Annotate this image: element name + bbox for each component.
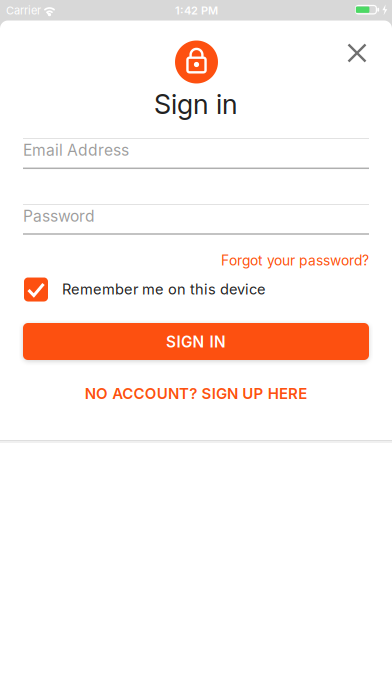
staticText: SIGN IN — [166, 333, 226, 351]
staticText: 1:42 PM — [175, 4, 218, 17]
staticText: Carrier — [6, 4, 41, 17]
staticText: Sign in — [154, 88, 238, 121]
staticText: Remember me on this device — [62, 280, 266, 298]
staticText: NO ACCOUNT? SIGN UP HERE — [85, 384, 307, 402]
staticText: Email Address — [23, 141, 129, 159]
staticText: Password — [23, 207, 95, 225]
staticText: Forgot your password? — [221, 252, 369, 269]
